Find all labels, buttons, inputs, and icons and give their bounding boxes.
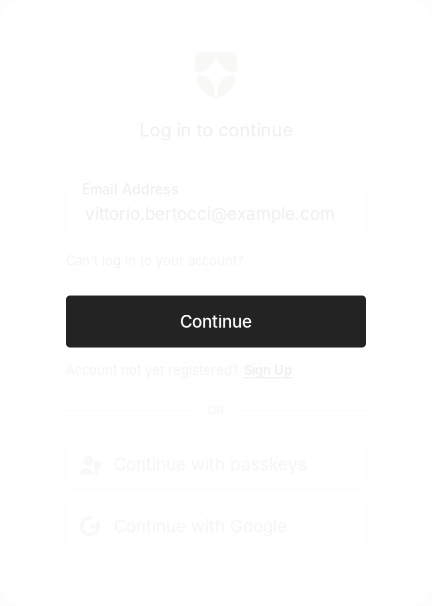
staticText: Sign Up bbox=[244, 362, 292, 378]
staticText: vittorio.bertocci@example.com bbox=[85, 203, 335, 224]
staticText: Account not yet registered? bbox=[66, 362, 239, 378]
staticText: Continue bbox=[180, 311, 252, 332]
button[interactable]: Continue bbox=[66, 295, 366, 347]
staticText: Log in to continue bbox=[139, 119, 292, 141]
staticText: Continue with passkeys bbox=[114, 454, 307, 475]
button[interactable]: Sign Up bbox=[244, 362, 292, 378]
staticText: OR bbox=[207, 403, 224, 418]
staticText: Continue with Google bbox=[114, 516, 287, 537]
staticText: Can't log in to your account? bbox=[66, 253, 244, 268]
staticText: Email Address bbox=[82, 181, 179, 198]
